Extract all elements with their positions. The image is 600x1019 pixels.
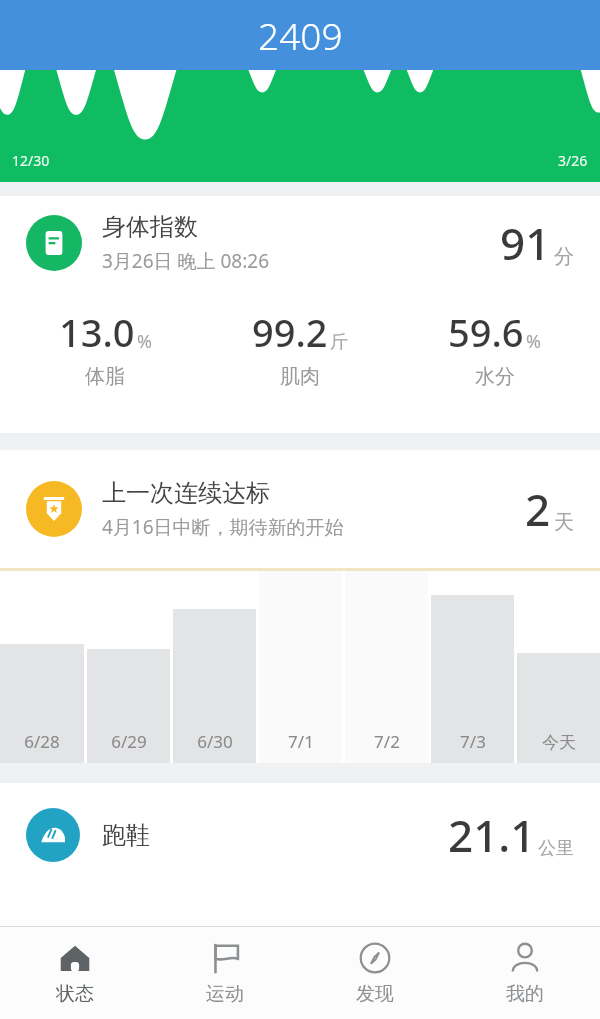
other: 运动 [208, 941, 242, 975]
staticText: 2 [525, 479, 551, 539]
staticText: 6/30 [197, 730, 233, 753]
staticText: 肌肉 [280, 364, 320, 389]
staticText: 91 [500, 213, 551, 273]
button[interactable]: 状态 [0, 927, 150, 1019]
button[interactable]: 上一次连续达标 [0, 450, 600, 568]
staticText: 公里 [538, 837, 574, 860]
staticText: 天 [554, 510, 574, 535]
staticText: 身体指数 [102, 212, 198, 242]
button[interactable]: 13.0 [8, 306, 202, 389]
staticText: 2409 [258, 10, 343, 60]
staticText: 7/2 [374, 730, 400, 753]
staticText: 7/3 [460, 730, 486, 753]
staticText: 我的 [506, 982, 544, 1006]
staticText: 体脂 [85, 364, 125, 389]
staticText: 状态 [56, 982, 94, 1006]
staticText: 上一次连续达标 [102, 478, 270, 508]
staticText: 7/1 [288, 730, 314, 753]
other: 我的 [508, 941, 542, 975]
button[interactable]: 59.6 [397, 306, 592, 389]
button[interactable]: 运动 [150, 927, 300, 1019]
staticText: 99.2 [252, 306, 328, 358]
staticText: 斤 [330, 331, 348, 354]
button[interactable]: 6/28 [0, 571, 600, 763]
staticText: 跑鞋 [102, 820, 448, 850]
button[interactable]: 身体指数 [0, 196, 600, 433]
other: 状态 [58, 941, 92, 975]
button[interactable]: 发现 [300, 927, 450, 1019]
staticText: % [526, 329, 541, 354]
staticText: 6/28 [24, 730, 60, 753]
staticText: 6/29 [111, 730, 147, 753]
button[interactable]: 99.2 [202, 306, 397, 389]
staticText: % [137, 329, 152, 354]
staticText: 今天 [542, 732, 576, 753]
staticText: 运动 [206, 982, 244, 1006]
staticText: 21.1 [448, 805, 536, 865]
staticText: 59.6 [448, 306, 524, 358]
staticText: 13.0 [59, 306, 135, 358]
staticText: 3月26日 晚上 08:26 [102, 248, 270, 274]
staticText: 3/26 [558, 151, 588, 170]
staticText: 分 [554, 244, 574, 269]
button[interactable]: 我的 [450, 927, 600, 1019]
button[interactable]: 跑鞋 [0, 783, 600, 887]
staticText: 发现 [356, 982, 394, 1006]
staticText: 水分 [475, 364, 515, 389]
staticText: 12/30 [12, 151, 50, 170]
staticText: 4月16日中断，期待新的开始 [102, 514, 344, 540]
other: 发现 [358, 941, 392, 975]
